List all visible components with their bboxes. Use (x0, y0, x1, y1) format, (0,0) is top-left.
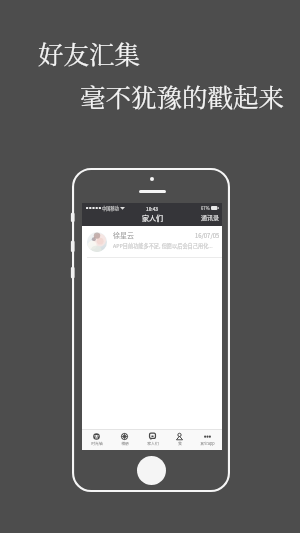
staticText: 毫不犹豫的戳起来 (80, 78, 285, 115)
staticText: 家人们 (142, 213, 163, 223)
staticText: 其它app (200, 441, 215, 447)
button[interactable]: 通讯录 (198, 211, 222, 224)
staticText: 我 (178, 441, 182, 447)
staticText: 好友汇集 (38, 35, 141, 72)
button[interactable]: 我 (166, 432, 193, 447)
staticText: 家人们 (147, 441, 159, 447)
button[interactable]: 徐星云 (82, 226, 222, 257)
button[interactable]: 相册 (111, 432, 138, 447)
staticText: APP目前功能多不足, 但愿以后会自己用化... (113, 242, 213, 250)
staticText: 67% (201, 205, 210, 211)
staticText: 通讯录 (201, 213, 220, 222)
staticText: 徐星云 (113, 230, 134, 240)
staticText: 中国移动 (102, 205, 119, 211)
button[interactable]: Home (137, 456, 166, 485)
button[interactable]: 家人们 (139, 432, 166, 447)
staticText: 时光轴 (91, 441, 103, 447)
staticText: 16/07/05 (195, 231, 220, 240)
button[interactable]: 其它app (194, 432, 221, 447)
staticText: 10:43 (146, 205, 158, 212)
button[interactable]: 时光轴 (83, 432, 110, 447)
staticText: 相册 (121, 441, 129, 447)
